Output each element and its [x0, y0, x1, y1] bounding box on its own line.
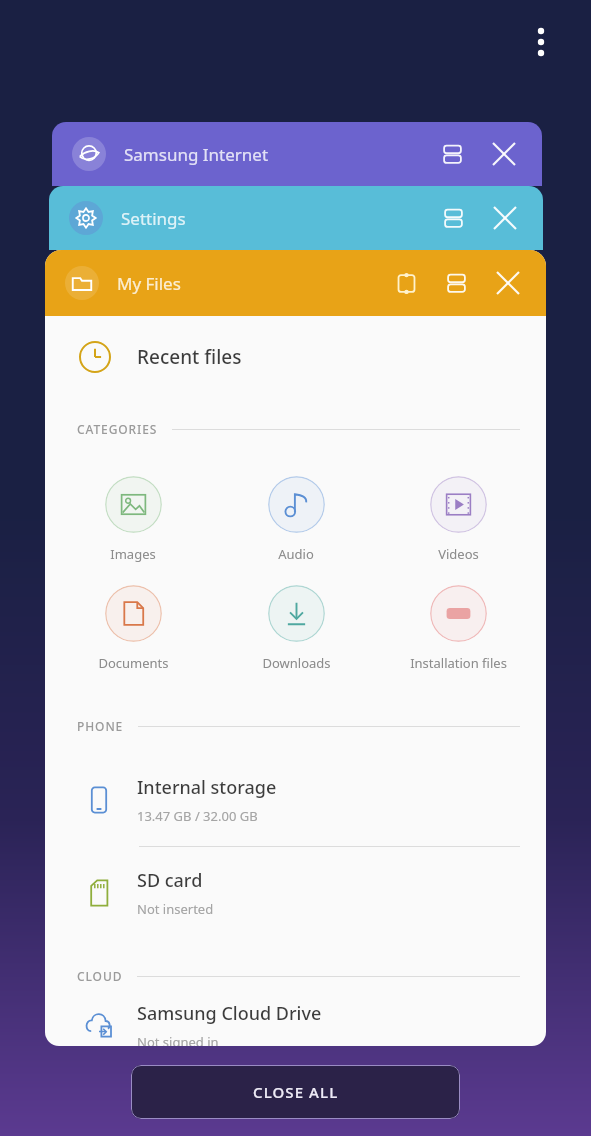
button[interactable]: More options	[515, 16, 567, 68]
button[interactable]: Recent files	[45, 316, 546, 398]
button[interactable]: Settings	[49, 186, 543, 250]
button[interactable]: Close	[481, 194, 529, 242]
button[interactable]: Split screen view	[429, 194, 477, 242]
button[interactable]: Downloads	[221, 581, 371, 676]
button[interactable]: Samsung Internet	[52, 122, 542, 186]
staticText: SD card	[137, 868, 203, 893]
staticText: My Files	[117, 272, 382, 295]
staticText: Downloads	[262, 654, 331, 672]
staticText: Installation files	[410, 654, 507, 672]
button[interactable]: Close	[480, 130, 528, 178]
button[interactable]: Documents	[58, 581, 208, 676]
staticText: Settings	[121, 207, 429, 230]
button[interactable]: Split screen view	[428, 130, 476, 178]
staticText: 13.47 GB / 32.00 GB	[137, 807, 258, 825]
staticText: Internal storage	[137, 775, 277, 800]
staticText: CLOSE ALL	[253, 1082, 339, 1102]
button[interactable]: Samsung Cloud Drive	[45, 1001, 546, 1046]
button[interactable]: SD card	[45, 847, 546, 939]
button[interactable]: Videos	[383, 472, 533, 567]
staticText: Samsung Internet	[124, 143, 428, 166]
staticText: CLOUD	[77, 968, 123, 984]
button[interactable]: Pop-up view	[382, 259, 430, 307]
button[interactable]: Split screen view	[432, 259, 480, 307]
button[interactable]: Internal storage	[45, 754, 546, 846]
button[interactable]: Close	[484, 259, 532, 307]
staticText: Samsung Cloud Drive	[137, 1001, 322, 1026]
staticText: Audio	[278, 545, 314, 563]
button[interactable]: Installation files	[383, 581, 533, 676]
button[interactable]: CLOSE ALL	[131, 1065, 460, 1119]
staticText: CATEGORIES	[77, 421, 158, 437]
staticText: Not signed in	[137, 1033, 219, 1046]
staticText: Documents	[98, 654, 169, 672]
staticText: Not inserted	[137, 900, 214, 918]
staticText: PHONE	[77, 718, 124, 734]
staticText: Images	[110, 545, 156, 563]
staticText: Recent files	[137, 344, 242, 370]
button[interactable]: My Files	[45, 250, 546, 316]
button[interactable]: Audio	[221, 472, 371, 567]
staticText: Videos	[438, 545, 479, 563]
button[interactable]: Images	[58, 472, 208, 567]
